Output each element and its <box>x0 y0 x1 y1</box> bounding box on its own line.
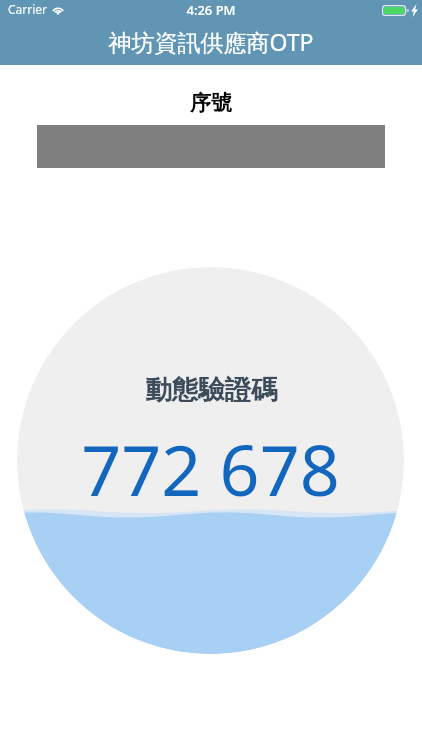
button[interactable]: 動態驗證碼 772 678 <box>17 267 404 654</box>
staticText: Carrier <box>8 1 48 17</box>
staticText: 神坊資訊供應商OTP <box>0 26 422 57</box>
staticText: 動態驗證碼 <box>18 373 404 406</box>
staticText: 4:26 PM <box>0 1 422 19</box>
staticText: 序號 <box>0 90 422 116</box>
staticText: 772 678 <box>17 421 404 516</box>
